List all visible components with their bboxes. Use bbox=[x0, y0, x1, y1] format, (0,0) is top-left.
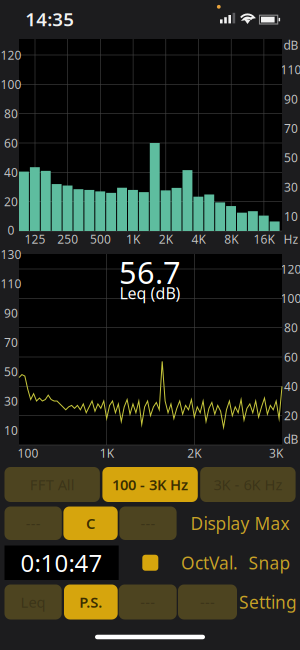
staticText: Leq (dB) bbox=[119, 282, 180, 304]
button[interactable]: OctVal. bbox=[177, 545, 242, 580]
staticText: Hz bbox=[283, 231, 298, 247]
staticText: 20 bbox=[284, 408, 298, 424]
button[interactable]: C bbox=[63, 506, 118, 540]
button[interactable]: P.S. bbox=[64, 584, 118, 619]
button[interactable]: --- bbox=[119, 584, 177, 619]
staticText: 50 bbox=[284, 150, 298, 166]
staticText: Setting bbox=[239, 590, 297, 613]
staticText: 3K bbox=[269, 445, 283, 461]
staticText: 50 bbox=[4, 364, 18, 380]
staticText: dB bbox=[283, 37, 298, 53]
staticText: 120 bbox=[0, 47, 21, 63]
staticText: 1K bbox=[100, 445, 114, 461]
staticText: --- bbox=[140, 513, 155, 533]
staticText: 2K bbox=[187, 445, 201, 461]
staticText: OctVal. bbox=[181, 551, 238, 574]
button[interactable]: Display Max bbox=[186, 506, 293, 541]
staticText: 80 bbox=[284, 320, 298, 336]
staticText: 110 bbox=[0, 276, 21, 292]
button[interactable]: 100 - 3K Hz bbox=[102, 467, 198, 502]
staticText: 30 bbox=[4, 393, 18, 409]
staticText: 10 bbox=[4, 422, 18, 438]
button[interactable]: --- bbox=[4, 506, 62, 540]
staticText: Display Max bbox=[190, 512, 289, 535]
staticText: 1K bbox=[126, 231, 140, 247]
button[interactable]: 0:10:47 bbox=[4, 545, 119, 580]
staticText: 14:35 bbox=[25, 7, 74, 31]
staticText: 70 bbox=[284, 120, 298, 136]
staticText: 90 bbox=[284, 91, 298, 107]
staticText: 2K bbox=[159, 231, 173, 247]
staticText: P.S. bbox=[79, 592, 102, 612]
button[interactable]: Snap bbox=[244, 545, 294, 580]
staticText: --- bbox=[26, 513, 41, 533]
staticText: 100 bbox=[17, 445, 38, 461]
staticText: FFT All bbox=[30, 475, 75, 494]
button[interactable]: Toggle bbox=[142, 555, 158, 571]
button[interactable]: FFT All bbox=[4, 467, 100, 502]
staticText: 0 bbox=[7, 222, 14, 238]
button[interactable]: --- bbox=[119, 506, 177, 540]
staticText: dB bbox=[283, 431, 298, 447]
button[interactable]: 3K - 6K Hz bbox=[200, 467, 296, 502]
staticText: 3K - 6K Hz bbox=[213, 475, 282, 494]
staticText: 40 bbox=[284, 378, 298, 394]
staticText: 90 bbox=[4, 305, 18, 321]
staticText: 70 bbox=[4, 334, 18, 350]
staticText: 125 bbox=[24, 231, 45, 247]
staticText: 16K bbox=[253, 231, 274, 247]
staticText: Leq bbox=[21, 592, 46, 612]
staticText: 100 - 3K Hz bbox=[112, 475, 188, 494]
staticText: Snap bbox=[248, 551, 290, 574]
staticText: 100 bbox=[280, 290, 300, 306]
staticText: 10 bbox=[284, 208, 298, 224]
staticText: 80 bbox=[4, 106, 18, 122]
staticText: 8K bbox=[224, 231, 238, 247]
staticText: 4K bbox=[191, 231, 205, 247]
button[interactable]: --- bbox=[178, 584, 237, 619]
staticText: 40 bbox=[4, 164, 18, 180]
staticText: 100 bbox=[0, 76, 21, 92]
staticText: 56.7 bbox=[119, 252, 181, 292]
staticText: 120 bbox=[280, 261, 300, 277]
button[interactable]: Setting bbox=[235, 584, 300, 619]
staticText: C bbox=[86, 513, 95, 533]
staticText: 60 bbox=[4, 135, 18, 151]
staticText: 110 bbox=[280, 62, 300, 78]
staticText: 500 bbox=[90, 231, 111, 247]
staticText: 0:10:47 bbox=[21, 547, 103, 579]
staticText: 60 bbox=[284, 349, 298, 365]
button[interactable]: Leq bbox=[4, 584, 62, 619]
staticText: 250 bbox=[57, 231, 78, 247]
staticText: 20 bbox=[4, 194, 18, 210]
staticText: 30 bbox=[284, 179, 298, 195]
staticText: 130 bbox=[0, 246, 21, 262]
